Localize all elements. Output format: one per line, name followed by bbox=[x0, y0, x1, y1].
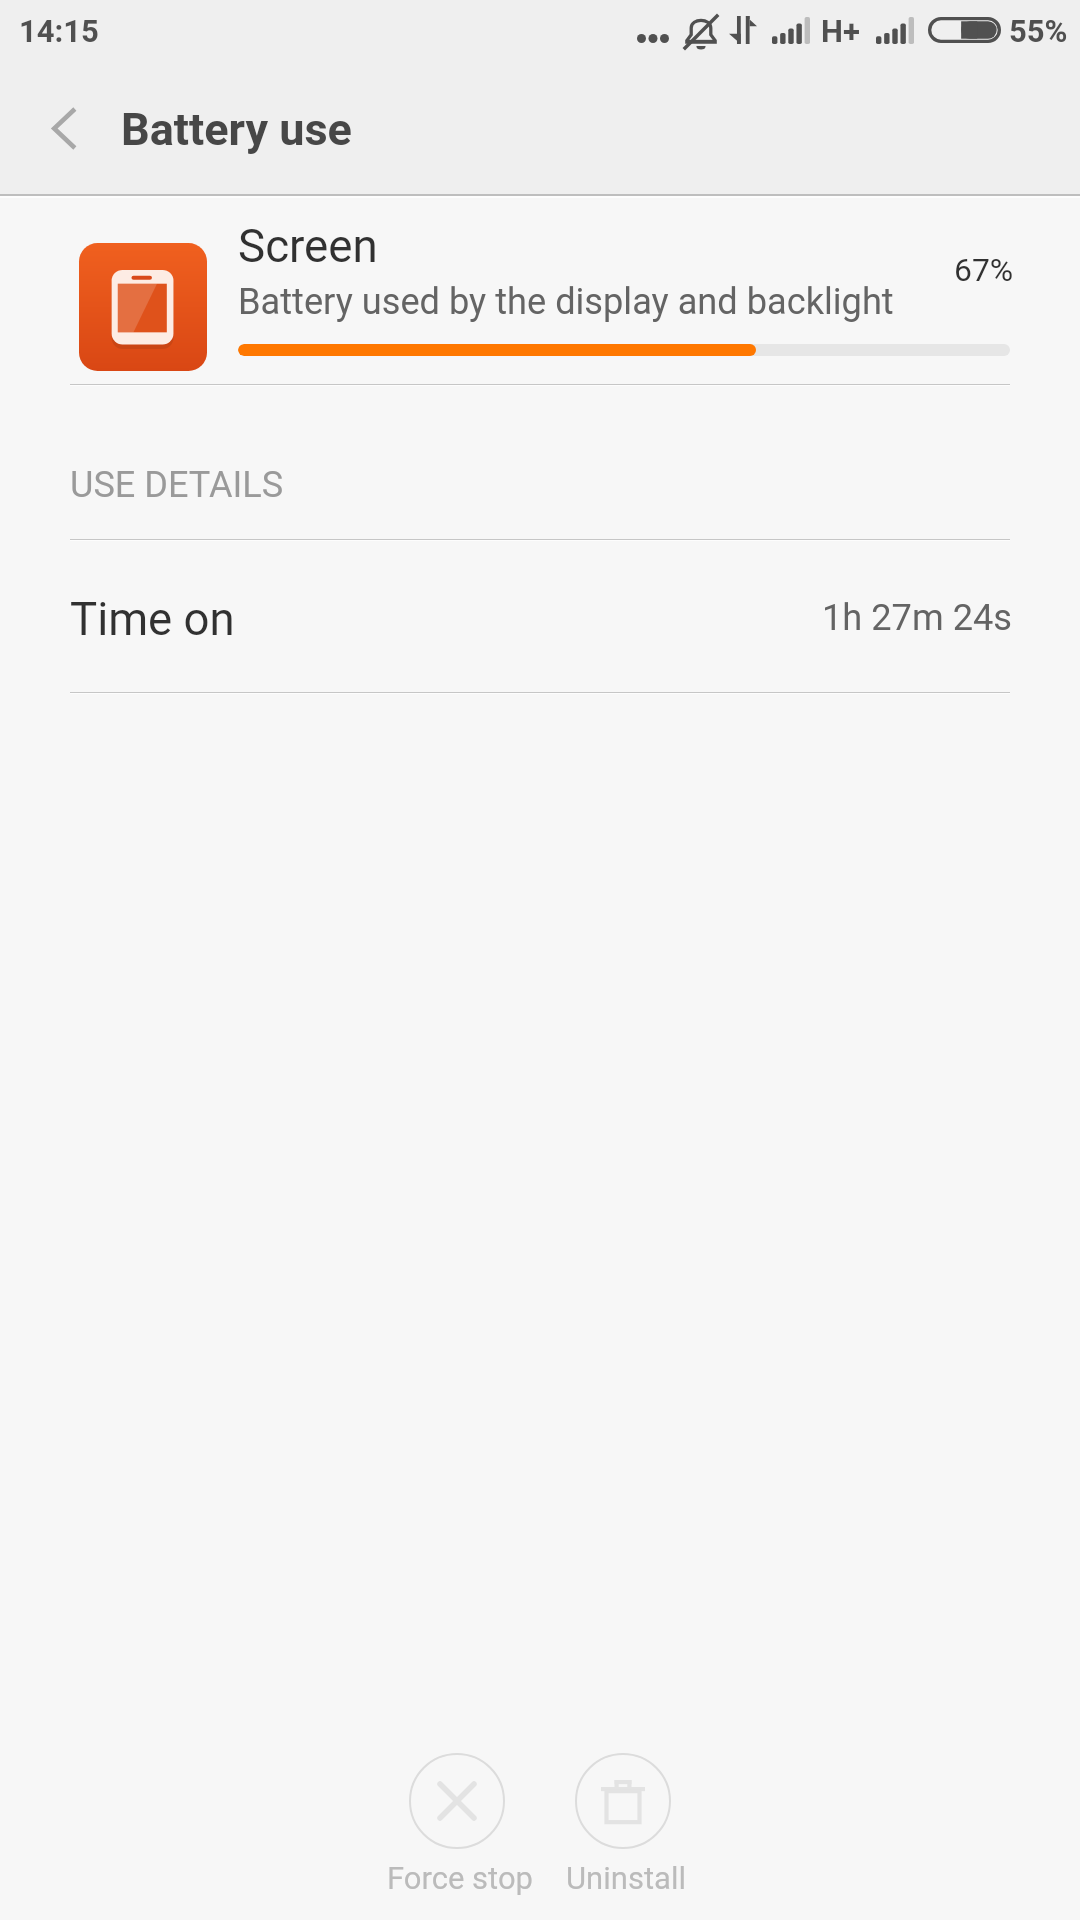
button[interactable] bbox=[370, 1740, 546, 1910]
button[interactable] bbox=[0, 540, 1080, 692]
staticText: 14:15 bbox=[19, 13, 99, 49]
staticText: Uninstall bbox=[566, 1860, 686, 1896]
staticText: Battery use bbox=[121, 103, 352, 156]
staticText: H+ bbox=[821, 13, 860, 49]
button[interactable] bbox=[546, 1740, 706, 1910]
staticText: Force stop bbox=[387, 1860, 533, 1896]
staticText: 1h 27m 24s bbox=[822, 596, 1012, 638]
button[interactable] bbox=[0, 198, 1080, 384]
staticText: Screen bbox=[238, 220, 378, 274]
staticText: Time on bbox=[70, 593, 235, 646]
button[interactable]: Back bbox=[10, 72, 118, 184]
staticText: 67% bbox=[954, 251, 1014, 288]
staticText: Battery used by the display and backligh… bbox=[238, 280, 894, 322]
staticText: 55% bbox=[1009, 13, 1068, 49]
staticText: USE DETAILS bbox=[70, 464, 284, 506]
